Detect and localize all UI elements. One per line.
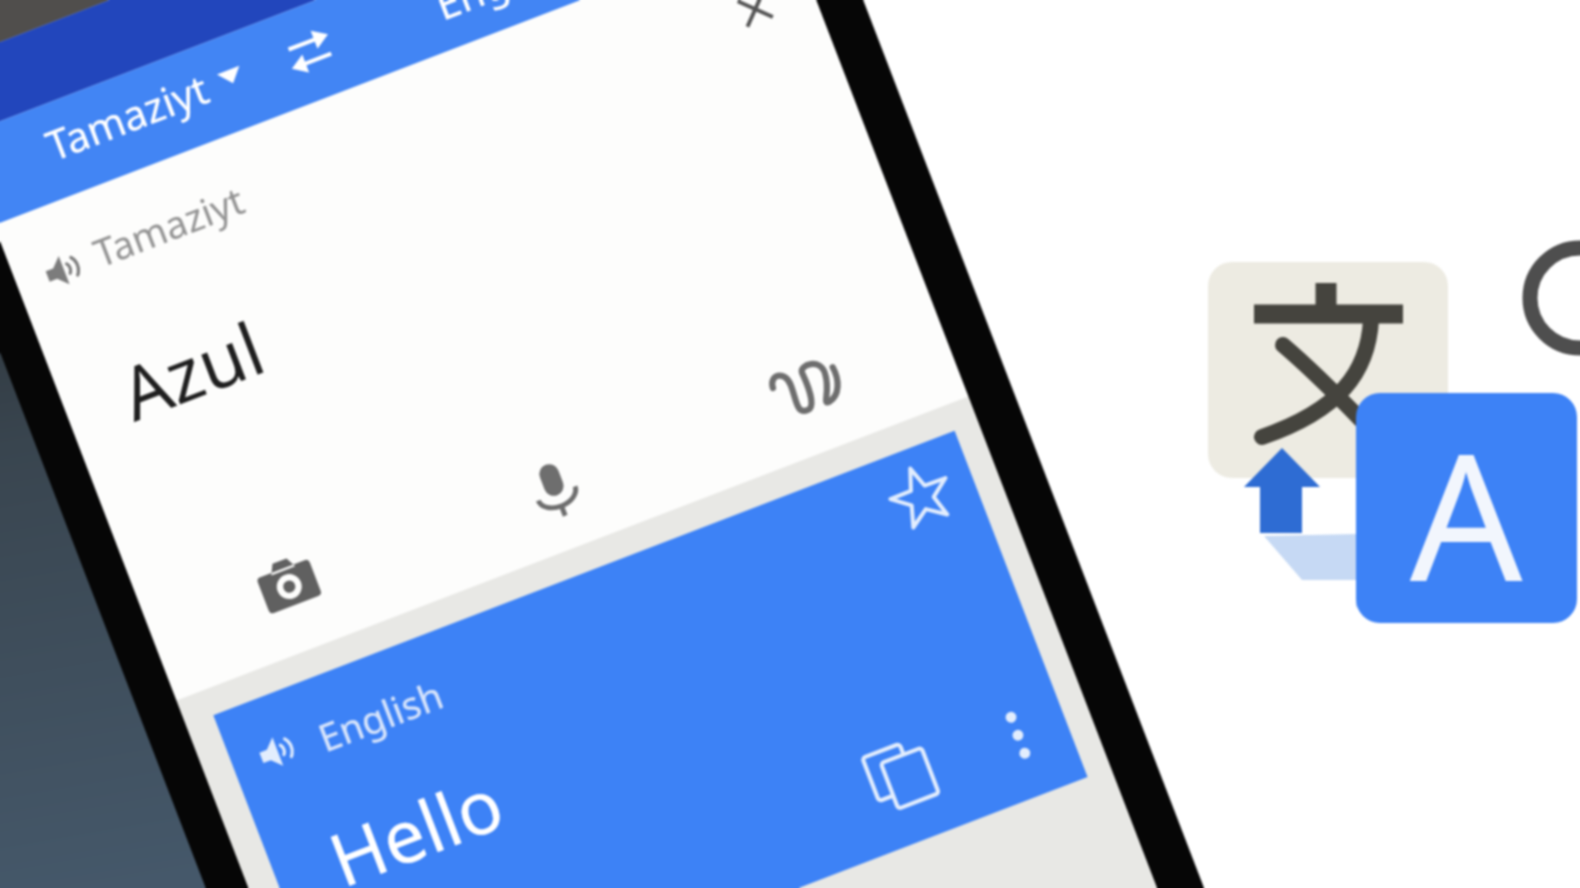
staticText: English xyxy=(310,668,450,763)
staticText: Tamaziyt xyxy=(38,60,216,173)
staticText: Hello xyxy=(315,752,516,888)
staticText: Tamaziyt xyxy=(86,173,252,278)
staticText: A xyxy=(1410,393,1523,623)
button[interactable]: Swap languages xyxy=(266,8,354,95)
button[interactable]: More options xyxy=(980,693,1056,777)
button[interactable]: Camera input xyxy=(239,534,337,632)
button[interactable]: Voice input xyxy=(509,443,602,536)
button[interactable]: Listen to translation xyxy=(250,723,307,780)
button[interactable]: Tamaziyt xyxy=(85,135,348,280)
button[interactable]: Listen to source xyxy=(36,241,93,298)
button[interactable]: Copy translation xyxy=(854,728,947,821)
button[interactable]: Clear text xyxy=(722,0,789,43)
staticText: Azul xyxy=(106,297,276,439)
button[interactable]: Save translation xyxy=(874,449,967,542)
button[interactable]: English xyxy=(424,0,683,39)
staticText: English xyxy=(427,0,578,32)
button[interactable]: Handwriting input xyxy=(758,344,854,428)
button[interactable]: Tamaziyt xyxy=(35,32,275,180)
button[interactable]: English xyxy=(310,630,545,765)
button[interactable] xyxy=(213,431,1087,888)
